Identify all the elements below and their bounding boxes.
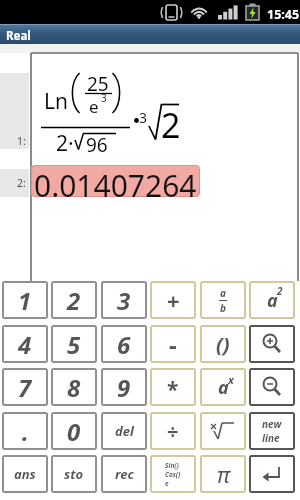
staticText: new bbox=[262, 417, 282, 431]
staticText: 2: bbox=[17, 176, 26, 190]
button[interactable]: 9 bbox=[101, 368, 147, 406]
staticText: 2 bbox=[56, 129, 69, 158]
staticText: b bbox=[220, 301, 226, 315]
staticText: Real bbox=[6, 28, 31, 44]
staticText: 4 bbox=[18, 328, 32, 361]
staticText: del bbox=[115, 422, 134, 440]
button[interactable] bbox=[249, 455, 295, 493]
staticText: 96 bbox=[86, 132, 108, 158]
staticText: 2 bbox=[67, 284, 81, 317]
staticText: . bbox=[22, 415, 29, 448]
staticText: 3 bbox=[139, 108, 148, 127]
staticText: ÷ bbox=[167, 418, 179, 445]
staticText: 3 bbox=[117, 284, 131, 317]
button[interactable]: ans bbox=[2, 455, 48, 493]
button[interactable] bbox=[249, 325, 295, 363]
staticText: - bbox=[169, 328, 177, 361]
button[interactable]: () bbox=[200, 325, 246, 363]
staticText: x bbox=[228, 372, 234, 387]
button[interactable]: a bbox=[249, 281, 295, 319]
button[interactable]: sto bbox=[51, 455, 97, 493]
staticText: a bbox=[218, 375, 229, 400]
staticText: 7 bbox=[18, 371, 32, 404]
staticText: 5 bbox=[67, 328, 81, 361]
button[interactable]: a bbox=[200, 368, 246, 406]
staticText: 6 bbox=[117, 328, 131, 361]
staticText: Cos() bbox=[165, 470, 181, 479]
button[interactable]: . bbox=[2, 412, 48, 450]
staticText: π bbox=[217, 459, 230, 489]
button[interactable]: ÷ bbox=[150, 412, 196, 450]
staticText: Ln bbox=[44, 87, 68, 116]
button[interactable]: 3 bbox=[101, 281, 147, 319]
button[interactable]: rec bbox=[101, 455, 147, 493]
button[interactable]: a bbox=[200, 281, 246, 319]
staticText: 0 bbox=[67, 415, 81, 448]
staticText: rec bbox=[115, 465, 134, 483]
button[interactable]: * bbox=[150, 368, 196, 406]
staticText: · bbox=[68, 129, 74, 158]
button[interactable]: Sin() bbox=[150, 455, 196, 493]
button[interactable]: 5 bbox=[51, 325, 97, 363]
button[interactable]: 6 bbox=[101, 325, 147, 363]
button[interactable]: 8 bbox=[51, 368, 97, 406]
staticText: + bbox=[167, 285, 180, 315]
staticText: 2 bbox=[277, 284, 283, 298]
staticText: a bbox=[220, 286, 226, 300]
button[interactable]: new bbox=[249, 412, 295, 450]
staticText: line bbox=[262, 431, 280, 445]
button[interactable]: 2 bbox=[51, 281, 97, 319]
button[interactable] bbox=[31, 165, 200, 197]
staticText: 3 bbox=[101, 91, 107, 105]
staticText: 25 bbox=[87, 71, 109, 97]
staticText: 1 bbox=[18, 284, 32, 317]
button[interactable] bbox=[249, 368, 295, 406]
staticText: * bbox=[167, 375, 179, 404]
button[interactable] bbox=[200, 412, 246, 450]
button[interactable]: del bbox=[101, 412, 147, 450]
staticText: e bbox=[89, 95, 99, 118]
button[interactable]: 7 bbox=[2, 368, 48, 406]
button[interactable]: + bbox=[150, 281, 196, 319]
staticText: e bbox=[165, 479, 169, 488]
staticText: 1: bbox=[17, 134, 26, 148]
staticText: 15:45 bbox=[267, 6, 300, 23]
button[interactable]: - bbox=[150, 325, 196, 363]
staticText: 2 bbox=[161, 102, 181, 148]
button[interactable]: 0 bbox=[51, 412, 97, 450]
staticText: 9 bbox=[117, 371, 131, 404]
staticText: a bbox=[267, 288, 278, 313]
staticText: 0.01407264 bbox=[34, 165, 197, 206]
button[interactable]: π bbox=[200, 455, 246, 493]
staticText: ans bbox=[14, 465, 36, 483]
staticText: sto bbox=[64, 465, 84, 483]
button[interactable]: 4 bbox=[2, 325, 48, 363]
staticText: 8 bbox=[67, 371, 81, 404]
staticText: () bbox=[216, 331, 230, 358]
staticText: Sin() bbox=[165, 461, 179, 470]
button[interactable]: 1 bbox=[2, 281, 48, 319]
